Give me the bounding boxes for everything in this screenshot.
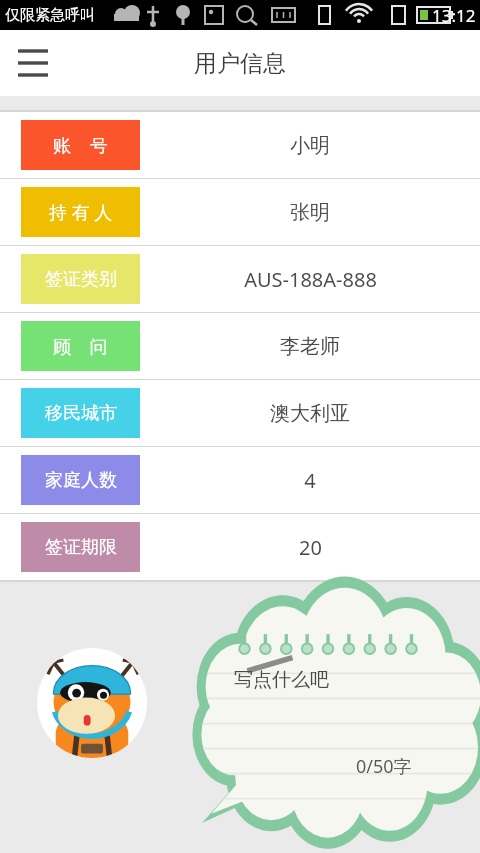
staticText: 签证类别: [45, 268, 117, 291]
button[interactable]: 顾 问: [0, 313, 480, 379]
staticText: AUS-188A-888: [244, 266, 377, 293]
staticText: 用户信息: [194, 49, 286, 78]
staticText: 账 号: [53, 133, 108, 158]
staticText: 签证期限: [45, 536, 117, 559]
staticText: 13:12: [432, 4, 476, 27]
staticText: 20: [299, 534, 322, 561]
button[interactable]: 账 号: [0, 112, 480, 178]
staticText: 移民城市: [45, 402, 117, 425]
staticText: 李老师: [280, 334, 340, 359]
staticText: 张明: [290, 200, 330, 225]
staticText: 4: [304, 467, 316, 494]
button[interactable]: Menu: [6, 36, 60, 90]
button[interactable]: Avatar: [37, 648, 147, 758]
button[interactable]: 签证期限: [0, 514, 480, 580]
staticText: 顾 问: [53, 334, 108, 359]
button[interactable]: 持 有 人: [0, 179, 480, 245]
button[interactable]: 移民城市: [0, 380, 480, 446]
button[interactable]: 签证类别: [0, 246, 480, 312]
staticText: 澳大利亚: [270, 401, 350, 426]
staticText: 写点什么吧: [234, 668, 329, 692]
button[interactable]: 家庭人数: [0, 447, 480, 513]
button[interactable]: 写点什么吧: [198, 608, 480, 826]
staticText: 仅限紧急呼叫: [5, 6, 95, 25]
staticText: 小明: [290, 133, 330, 158]
staticText: 0/50字: [356, 754, 412, 779]
staticText: 家庭人数: [45, 469, 117, 492]
staticText: 持 有 人: [49, 200, 113, 225]
